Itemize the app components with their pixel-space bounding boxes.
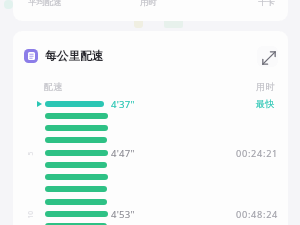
staticText: 用时 bbox=[256, 81, 275, 93]
button[interactable]: 4'37" bbox=[0, 98, 300, 110]
staticText: 10 bbox=[25, 210, 34, 218]
staticText: 00:24:21 bbox=[236, 147, 279, 159]
button[interactable]: 10 bbox=[0, 208, 300, 220]
staticText: 用时 bbox=[140, 0, 157, 8]
staticText: 最快 bbox=[256, 98, 275, 110]
button[interactable] bbox=[0, 159, 300, 171]
button[interactable] bbox=[0, 171, 300, 183]
staticText: 00:48:24 bbox=[236, 208, 279, 220]
staticText: 4'53" bbox=[111, 208, 135, 220]
staticText: 4'37" bbox=[111, 98, 135, 110]
staticText: 每公里配速 bbox=[45, 49, 104, 64]
button[interactable] bbox=[0, 220, 300, 225]
button[interactable] bbox=[0, 196, 300, 208]
staticText: 4'47" bbox=[111, 147, 135, 159]
button[interactable] bbox=[0, 134, 300, 146]
staticText: 5 bbox=[25, 151, 34, 155]
staticText: 配速 bbox=[44, 81, 63, 93]
staticText: 千卡 bbox=[258, 0, 275, 8]
button[interactable] bbox=[0, 183, 300, 195]
button[interactable]: 5 bbox=[0, 147, 300, 159]
button[interactable] bbox=[0, 122, 300, 134]
button[interactable]: Expand bbox=[257, 46, 278, 67]
staticText: 平均配速 bbox=[28, 0, 62, 8]
button[interactable] bbox=[0, 110, 300, 122]
